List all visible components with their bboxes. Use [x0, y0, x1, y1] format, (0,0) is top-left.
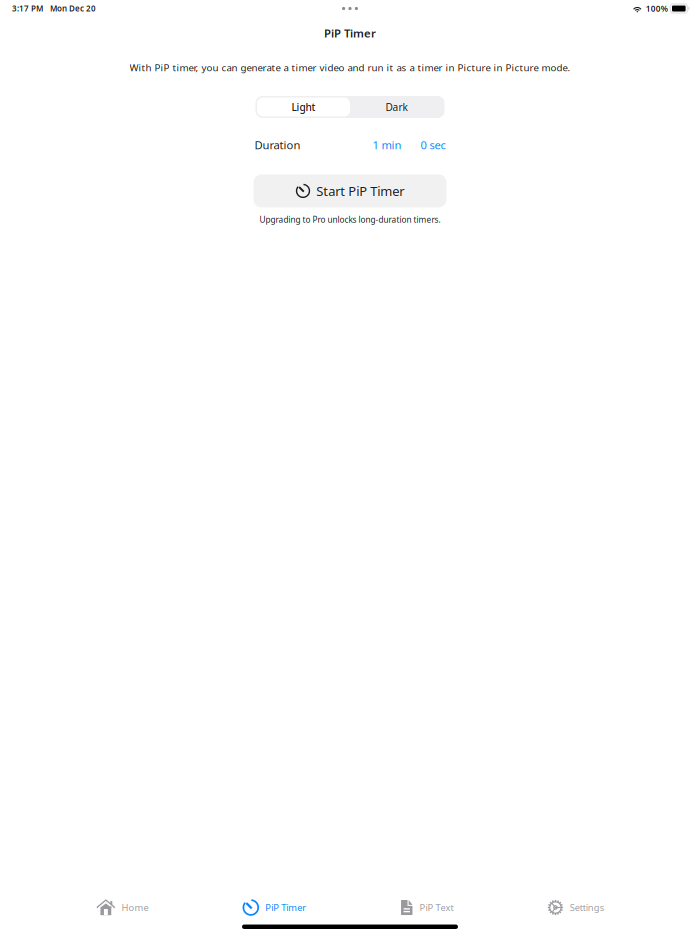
staticText: Light [291, 100, 315, 114]
button[interactable]: Home [90, 892, 155, 922]
button[interactable]: Dark [350, 97, 443, 116]
staticText: Dark [385, 100, 407, 114]
staticText: Upgrading to Pro unlocks long-duration t… [259, 214, 440, 225]
button[interactable]: 0 sec [401, 137, 445, 153]
staticText: Start PiP Timer [316, 182, 404, 200]
button[interactable]: PiP Text [394, 892, 459, 922]
button[interactable]: Light [257, 97, 350, 116]
staticText: Home [122, 901, 149, 914]
button[interactable]: PiP Timer [237, 892, 312, 922]
staticText: Mon Dec 20 [50, 3, 96, 14]
staticText: PiP Timer [265, 901, 306, 914]
staticText: Settings [570, 901, 604, 914]
staticText: 1 min [372, 137, 401, 153]
button[interactable]: Start PiP Timer [253, 174, 446, 207]
staticText: 100% [646, 3, 668, 14]
staticText: Duration [254, 137, 300, 153]
button[interactable]: 1 min [372, 137, 401, 153]
staticText: 3:17 PM [12, 3, 43, 14]
staticText: PiP Text [419, 901, 453, 914]
staticText: PiP Timer [324, 25, 376, 41]
staticText: 0 sec [420, 137, 445, 153]
staticText: With PiP timer, you can generate a timer… [129, 61, 570, 74]
button[interactable]: Settings [541, 892, 610, 922]
